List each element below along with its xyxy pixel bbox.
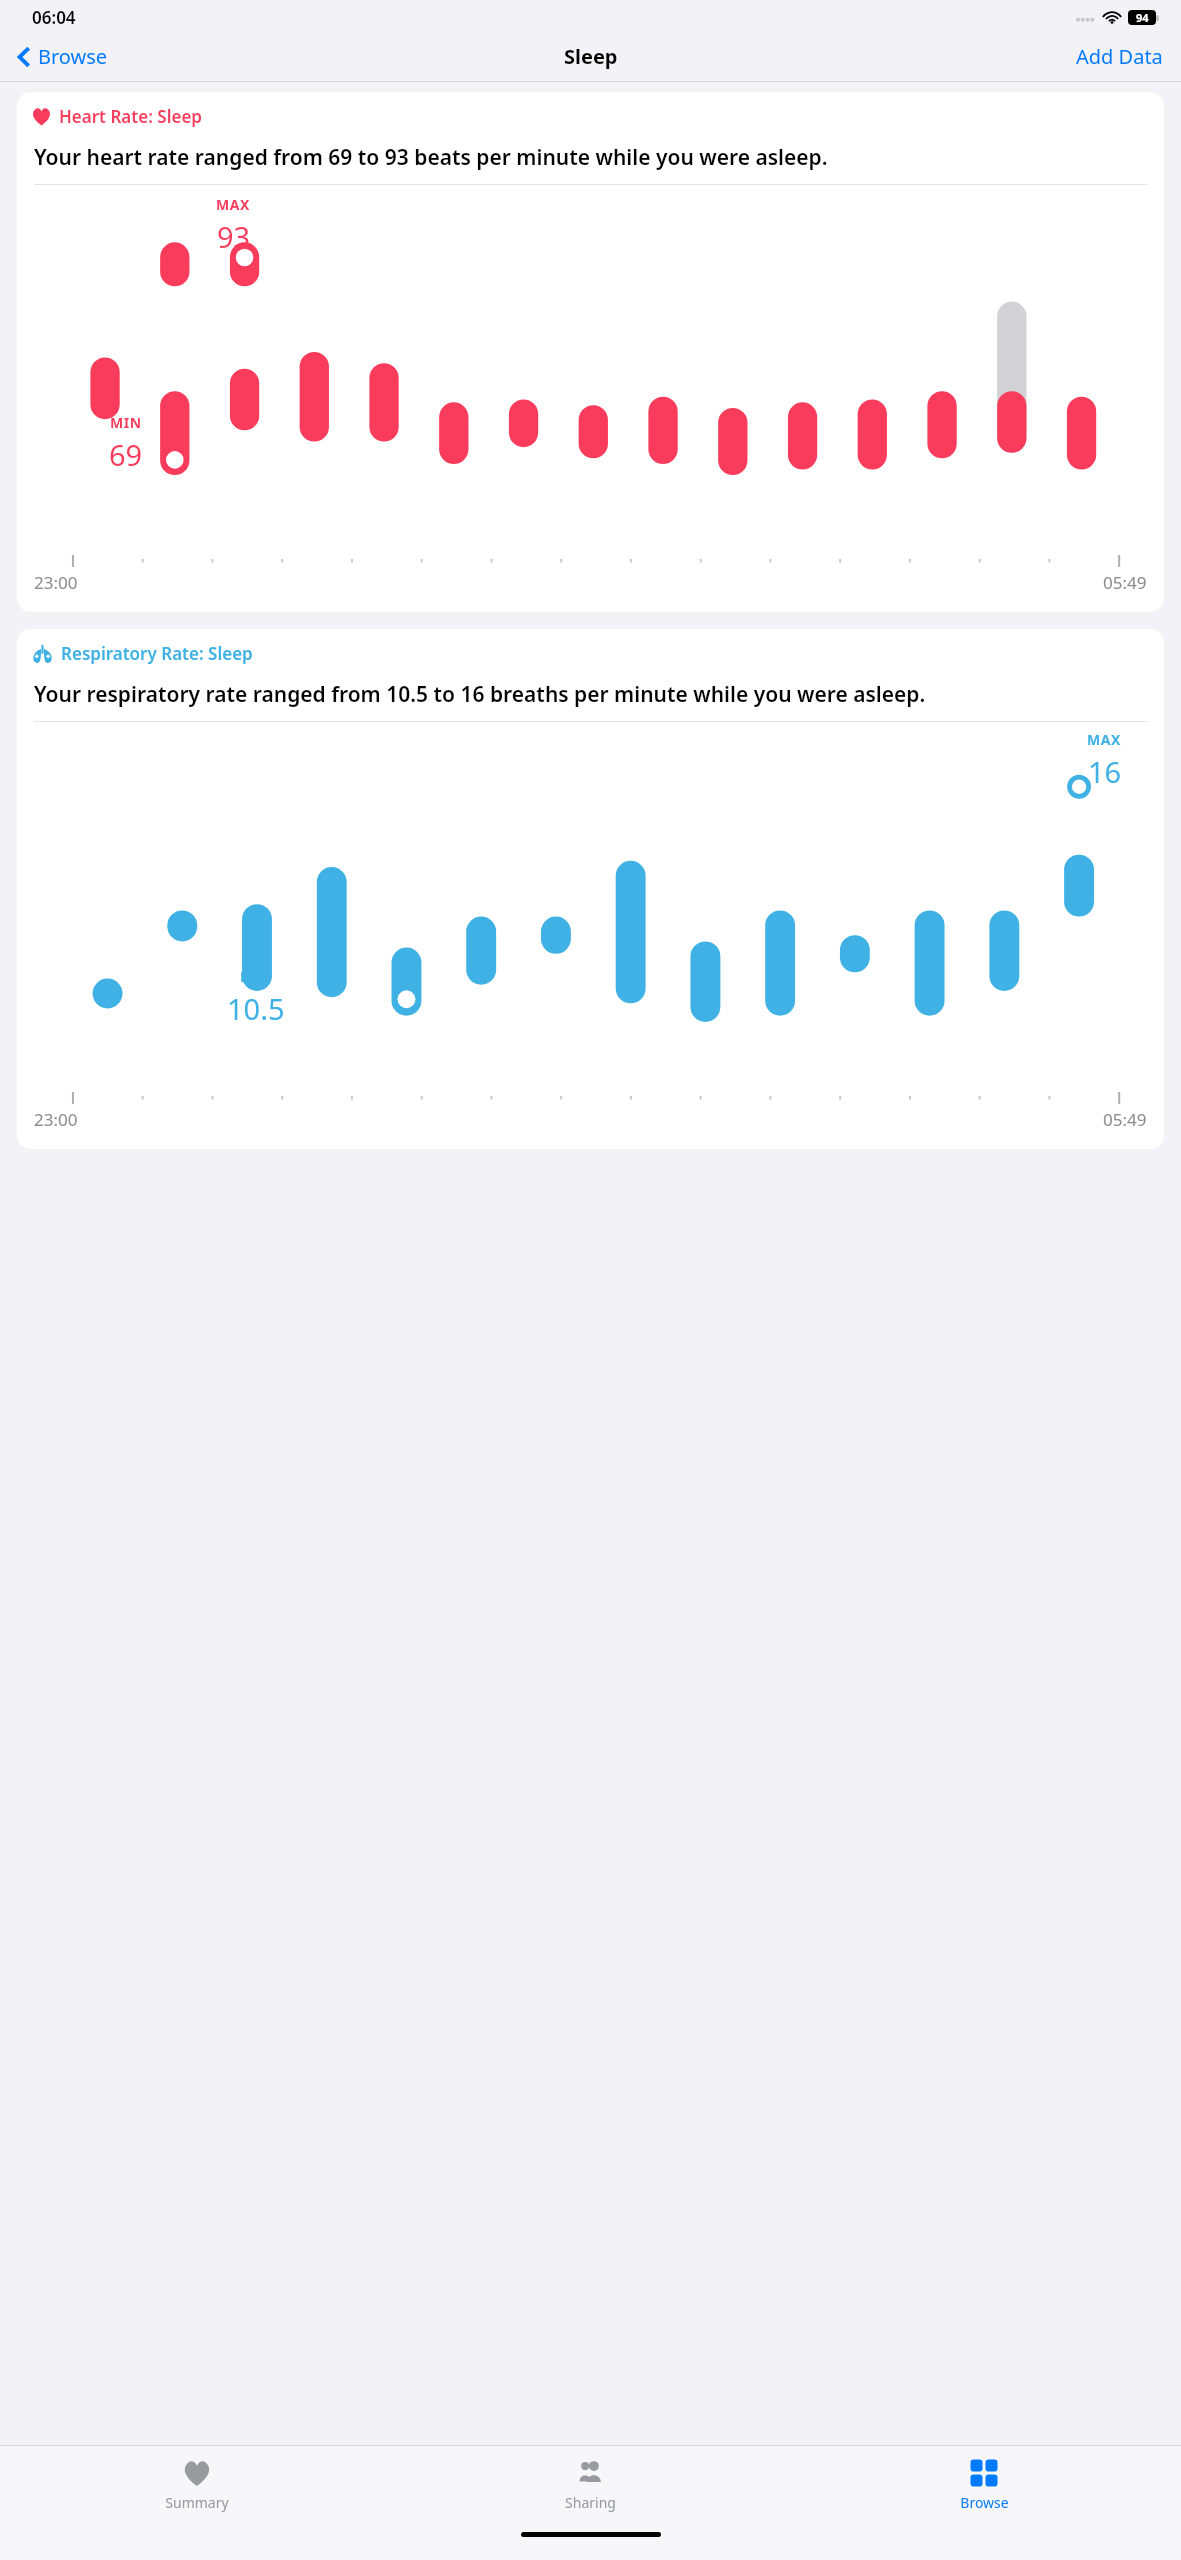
staticText: Browse	[38, 43, 108, 70]
staticText: Your heart rate ranged from 69 to 93 bea…	[34, 143, 828, 172]
staticText: Sharing	[565, 2493, 616, 2512]
staticText: 05:49	[1103, 571, 1147, 594]
staticText: 94	[1136, 10, 1149, 25]
staticText: 23:00	[34, 1108, 78, 1131]
other: Summary	[182, 2458, 212, 2488]
staticText: Your respiratory rate ranged from 10.5 t…	[34, 680, 926, 709]
staticText: MIN	[110, 413, 142, 432]
staticText: 93	[217, 217, 251, 256]
button[interactable]: Browse	[0, 37, 116, 76]
staticText: 23:00	[34, 571, 78, 594]
staticText: Heart Rate: Sleep	[59, 105, 202, 128]
staticText: 05:49	[1103, 1108, 1147, 1131]
button[interactable]: Summary	[0, 2452, 393, 2518]
button[interactable]: Heart Rate: Sleep	[17, 92, 1164, 612]
staticText: Browse	[960, 2493, 1009, 2512]
staticText: 69	[109, 435, 143, 474]
staticText: Respiratory Rate: Sleep	[61, 642, 253, 665]
staticText: Sleep	[564, 43, 618, 70]
button[interactable]: Sharing	[393, 2452, 787, 2518]
staticText: MIN	[240, 967, 272, 986]
button[interactable]: Add Data	[1058, 35, 1181, 78]
other: Browse	[969, 2458, 999, 2488]
staticText: MAX	[1087, 730, 1122, 749]
staticText: 10.5	[227, 989, 285, 1028]
staticText: Summary	[165, 2493, 229, 2512]
button[interactable]: Browse	[787, 2452, 1181, 2518]
staticText: 06:04	[32, 6, 76, 29]
button[interactable]: Respiratory Rate: Sleep	[17, 629, 1164, 1149]
staticText: MAX	[216, 195, 251, 214]
staticText: 16	[1088, 752, 1122, 791]
other: Sharing	[575, 2458, 605, 2488]
